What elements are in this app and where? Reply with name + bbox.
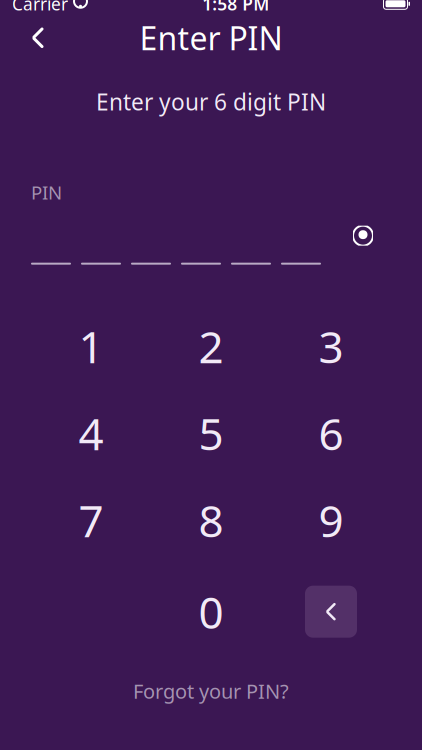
button[interactable]: Forgot your PIN?	[0, 668, 422, 714]
staticText: 3	[318, 317, 343, 375]
button[interactable]: Back	[16, 16, 60, 60]
button[interactable]: 5	[151, 390, 271, 477]
button[interactable]: 7	[31, 477, 151, 564]
staticText: Enter PIN	[139, 16, 282, 59]
button[interactable]: 9	[271, 477, 391, 564]
button[interactable]: 6	[271, 390, 391, 477]
staticText: PIN	[31, 180, 62, 205]
staticText: 9	[318, 491, 343, 549]
staticText: 7	[78, 491, 103, 549]
button[interactable]: 0	[151, 564, 271, 660]
button[interactable]: 2	[151, 303, 271, 390]
button[interactable]: 3	[271, 303, 391, 390]
staticText: Carrier	[12, 0, 68, 15]
staticText: 0	[198, 582, 223, 641]
staticText: Enter your 6 digit PIN	[96, 87, 326, 117]
staticText: 5	[198, 404, 223, 462]
staticText: 1:58 PM	[202, 0, 269, 15]
staticText: 8	[198, 491, 223, 549]
button[interactable]: 1	[31, 303, 151, 390]
button[interactable]: Show PIN	[346, 223, 380, 249]
button[interactable]: 8	[151, 477, 271, 564]
button[interactable]: Delete	[271, 564, 391, 660]
staticText: Forgot your PIN?	[133, 678, 289, 704]
staticText: 1	[78, 317, 103, 375]
button[interactable]: 4	[31, 390, 151, 477]
staticText: 2	[198, 317, 223, 375]
staticText: 6	[318, 404, 343, 462]
staticText: 4	[78, 404, 103, 462]
